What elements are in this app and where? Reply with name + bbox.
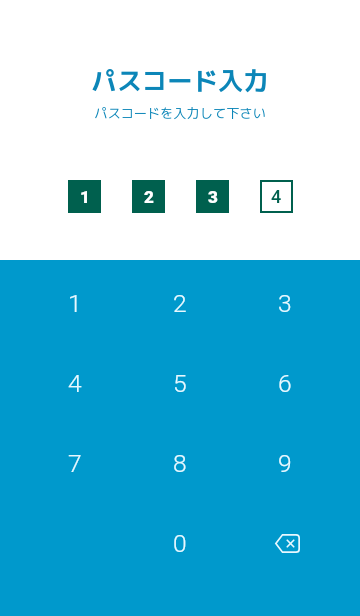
- staticText: 0: [173, 529, 187, 558]
- button[interactable]: 7: [23, 423, 127, 503]
- staticText: パスコードを入力して下さい: [94, 104, 266, 122]
- staticText: 4: [271, 186, 282, 207]
- button[interactable]: 2: [127, 263, 232, 343]
- staticText: パスコード入力: [91, 63, 269, 98]
- button[interactable]: 1: [68, 180, 101, 213]
- button[interactable]: 3: [196, 180, 229, 213]
- staticText: 2: [173, 289, 187, 318]
- button[interactable]: 4: [260, 180, 293, 213]
- staticText: 1: [80, 187, 90, 207]
- staticText: 5: [173, 369, 187, 398]
- staticText: 3: [278, 289, 292, 318]
- button[interactable]: Backspace: [275, 534, 300, 553]
- staticText: 8: [173, 449, 187, 478]
- button[interactable]: 6: [232, 343, 337, 423]
- button[interactable]: 2: [132, 180, 165, 213]
- staticText: 1: [68, 289, 82, 318]
- button[interactable]: 1: [23, 263, 127, 343]
- button[interactable]: 8: [127, 423, 232, 503]
- staticText: 3: [208, 187, 218, 207]
- button[interactable]: 5: [127, 343, 232, 423]
- staticText: 7: [68, 449, 82, 478]
- staticText: 4: [68, 369, 82, 398]
- button[interactable]: Backspace: [232, 503, 337, 583]
- staticText: 2: [144, 187, 154, 207]
- staticText: 9: [278, 449, 292, 478]
- staticText: 6: [278, 369, 292, 398]
- button[interactable]: 3: [232, 263, 337, 343]
- button[interactable]: 0: [127, 503, 232, 583]
- button[interactable]: 9: [232, 423, 337, 503]
- button[interactable]: 4: [23, 343, 127, 423]
